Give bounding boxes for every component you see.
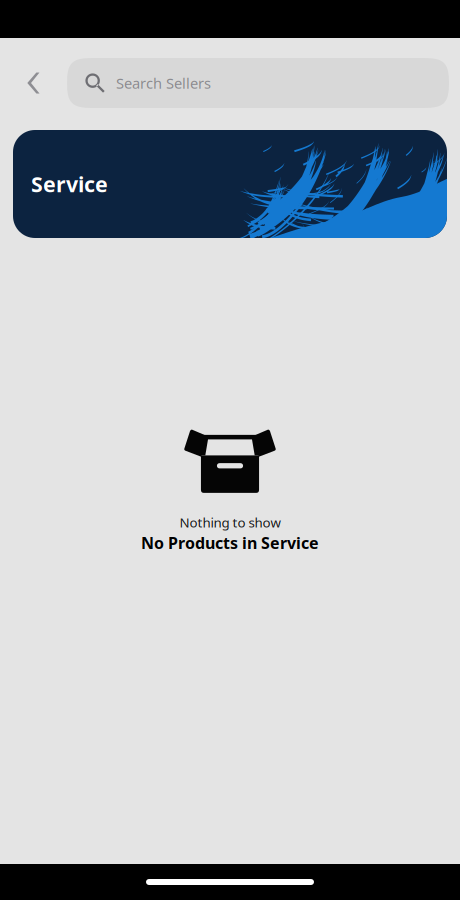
staticText: Nothing to show (179, 513, 280, 531)
button[interactable]: Back (0, 58, 67, 108)
staticText: Search Sellers (116, 73, 211, 93)
button[interactable]: Search Sellers (67, 58, 449, 108)
staticText: Service (31, 170, 108, 198)
staticText: No Products in Service (141, 532, 319, 553)
